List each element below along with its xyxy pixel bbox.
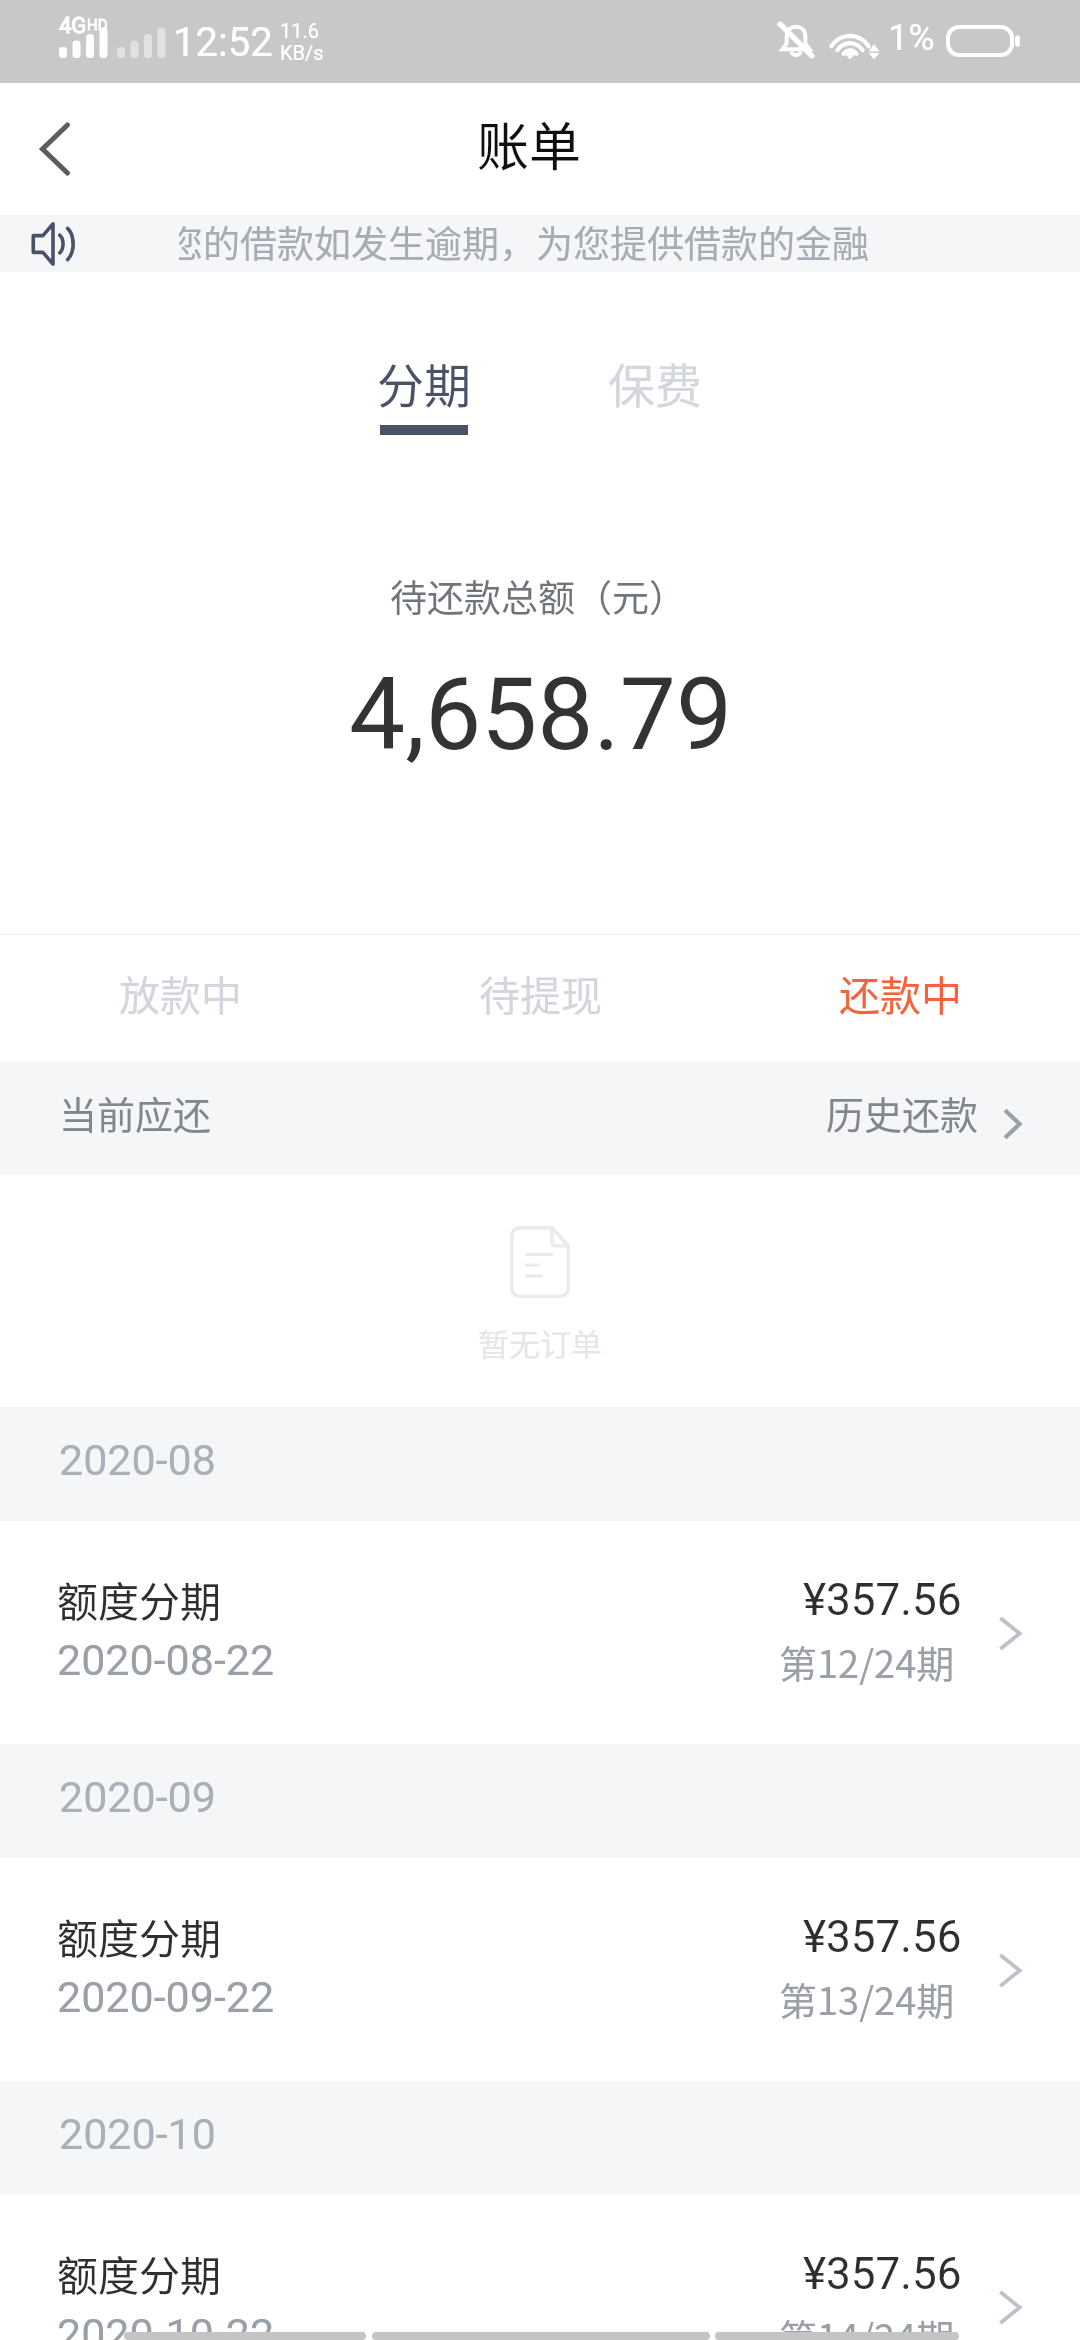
button[interactable]: 额度分期 (0, 2195, 1080, 2340)
staticText: 12:52 (173, 19, 273, 66)
button[interactable]: 保费 (595, 348, 715, 435)
button[interactable]: 放款中 (0, 935, 360, 1061)
staticText: 2020-10-22 (57, 2309, 275, 2340)
staticText: 分期 (377, 348, 471, 416)
staticText: 4,658.79 (349, 656, 733, 773)
staticText: 第12/24期 (779, 1634, 955, 1689)
staticText: 额度分期 (57, 1906, 221, 1965)
button[interactable]: 待提现 (360, 935, 720, 1061)
staticText: 当前应还 (59, 1085, 212, 1140)
staticText: 历史还款 (826, 1085, 979, 1140)
staticText: 2020-09-22 (57, 1972, 275, 2022)
staticText: 待还款总额（元） (390, 569, 686, 623)
button[interactable]: 额度分期 (0, 1858, 1080, 2081)
staticText: ¥357.56 (803, 1574, 962, 1626)
staticText: 额度分期 (57, 1569, 221, 1628)
staticText: 保费 (608, 348, 702, 416)
staticText: 2020-10 (59, 2109, 216, 2159)
button[interactable]: 分期 (364, 348, 484, 435)
staticText: 第13/24期 (779, 1971, 955, 2026)
staticText: 还款中 (839, 963, 962, 1022)
staticText: 1% (888, 17, 935, 59)
staticText: 放款中 (119, 963, 242, 1022)
staticText: 您的借款如发生逾期，为您提供借款的金融机构 (179, 215, 887, 261)
staticText: ¥357.56 (803, 2248, 962, 2300)
staticText: 第14/24期 (779, 2308, 955, 2340)
staticText: 账单 (477, 106, 582, 181)
staticText: 额度分期 (57, 2243, 221, 2302)
staticText: 4G (59, 13, 87, 39)
staticText: 待提现 (479, 963, 602, 1022)
button[interactable]: 历史还款 (826, 1085, 1025, 1140)
staticText: 2020-08 (59, 1435, 216, 1485)
staticText: 暂无订单 (478, 1320, 602, 1365)
staticText: 11.6 (280, 19, 319, 42)
button[interactable]: 额度分期 (0, 1521, 1080, 1744)
other: Announcement (32, 223, 74, 265)
staticText: ¥357.56 (803, 1911, 962, 1963)
button[interactable]: 还款中 (720, 935, 1080, 1061)
staticText: 2020-09 (59, 1772, 216, 1822)
staticText: HD (87, 16, 108, 34)
staticText: 2020-08-22 (57, 1635, 275, 1685)
staticText: KB/s (280, 41, 324, 64)
button[interactable]: Back (0, 83, 120, 215)
